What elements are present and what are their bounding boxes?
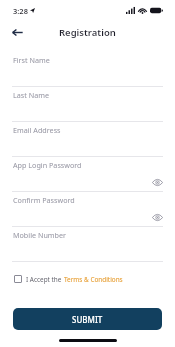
button[interactable]: Confirm Password <box>0 192 175 227</box>
staticText: App Login Password <box>13 160 82 170</box>
staticText: I Accept the <box>26 275 64 284</box>
button[interactable]: I Accept the <box>0 270 175 288</box>
button[interactable]: Email Address <box>0 122 175 157</box>
button[interactable]: Last Name <box>0 87 175 122</box>
staticText: Last Name <box>13 90 49 100</box>
button[interactable]: SUBMIT <box>13 308 162 330</box>
staticText: 3:28 <box>13 6 28 16</box>
staticText: Confirm Password <box>13 195 75 205</box>
staticText: Mobile Number <box>13 230 66 240</box>
button[interactable]: Show password <box>151 211 164 224</box>
button[interactable]: Back <box>7 22 27 42</box>
button[interactable]: Mobile Number <box>0 227 175 262</box>
staticText: Registration <box>59 26 116 39</box>
button[interactable]: App Login Password <box>0 157 175 192</box>
button[interactable]: First Name <box>0 52 175 87</box>
button[interactable]: Terms & Conditions <box>64 275 123 284</box>
staticText: SUBMIT <box>72 314 103 325</box>
staticText: Email Address <box>13 125 61 135</box>
button[interactable]: Show password <box>151 176 164 189</box>
staticText: First Name <box>13 55 50 65</box>
